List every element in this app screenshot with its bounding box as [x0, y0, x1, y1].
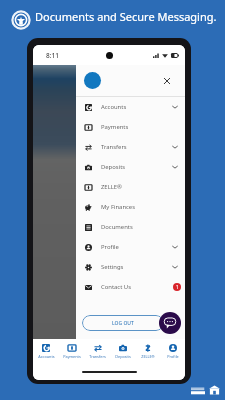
staticText: LOG OUT — [112, 320, 134, 327]
button[interactable]: Settings — [76, 257, 185, 277]
button[interactable]: Close menu — [161, 75, 173, 87]
button[interactable]: ZELLE® — [135, 344, 160, 365]
button[interactable]: Chat with us — [159, 312, 181, 334]
button[interactable]: My Finances — [76, 197, 185, 217]
staticText: Deposits — [101, 163, 126, 171]
button[interactable]: Profile — [160, 344, 185, 365]
staticText: Profile — [167, 354, 179, 359]
button[interactable]: Contact Us — [76, 277, 185, 297]
staticText: Transfers — [89, 354, 106, 359]
staticText: Documents — [101, 223, 133, 231]
button[interactable]: Deposits — [76, 157, 185, 177]
staticText: Settings — [101, 263, 124, 271]
staticText: 1 — [176, 284, 179, 290]
staticText: Payments — [101, 123, 129, 131]
staticText: Contact Us — [101, 283, 131, 291]
button[interactable]: Payments — [76, 117, 185, 137]
button[interactable]: Documents — [76, 217, 185, 237]
button[interactable]: Accounts — [76, 97, 185, 117]
staticText: Profile — [101, 243, 119, 251]
button[interactable]: Deposits — [110, 344, 135, 365]
staticText: ZELLE® — [141, 354, 155, 359]
staticText: Accounts — [38, 354, 55, 359]
button[interactable]: Transfers — [76, 137, 185, 157]
staticText: Accounts — [101, 103, 127, 111]
button[interactable]: Profile — [76, 237, 185, 257]
button[interactable]: Transfers — [85, 344, 110, 365]
staticText: 8:11 — [46, 51, 59, 60]
staticText: Documents and Secure Messaging. — [35, 9, 217, 24]
button[interactable]: Payments — [59, 344, 85, 365]
staticText: Deposits — [115, 354, 131, 359]
staticText: Payments — [63, 354, 81, 359]
button[interactable]: Accounts — [33, 344, 59, 365]
button[interactable]: ZELLE® — [76, 177, 185, 197]
button[interactable]: LOG OUT — [82, 315, 164, 331]
staticText: ZELLE® — [101, 183, 122, 191]
staticText: Transfers — [101, 143, 127, 151]
staticText: My Finances — [101, 203, 136, 211]
